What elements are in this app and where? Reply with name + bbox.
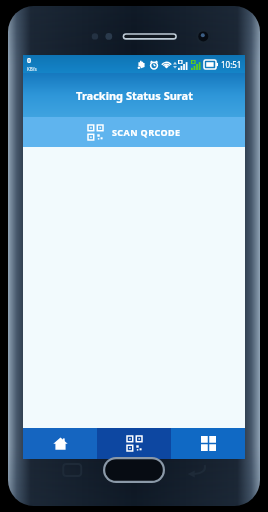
staticText: 0: [27, 56, 32, 66]
button[interactable]: SCAN QRCODE: [23, 117, 245, 147]
button[interactable]: Home: [23, 428, 97, 459]
button[interactable]: Apps: [171, 428, 245, 459]
staticText: SCAN QRCODE: [112, 126, 181, 138]
button[interactable]: Scan QR code: [97, 428, 171, 459]
staticText: Tracking Status Surat: [76, 88, 193, 103]
staticText: KB/s: [27, 66, 37, 72]
staticText: 10:51: [221, 59, 242, 70]
